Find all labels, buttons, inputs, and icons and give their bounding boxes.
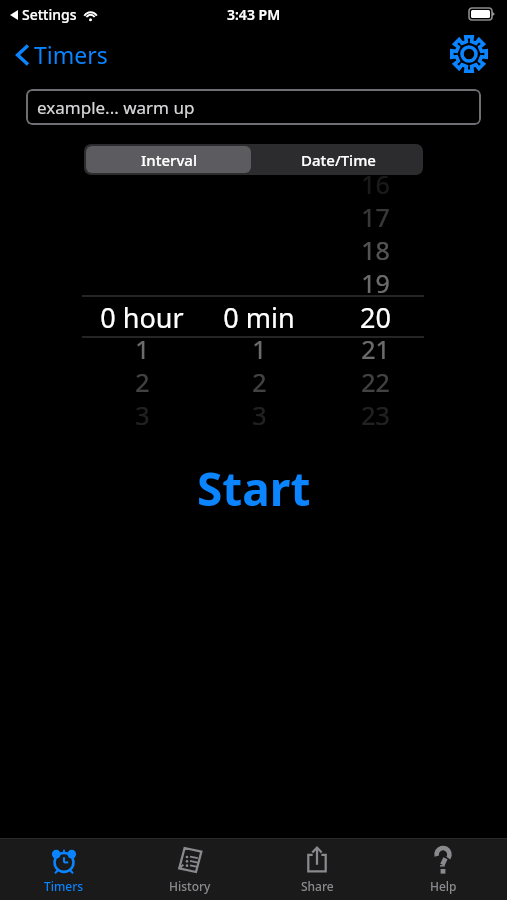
staticText: Timers <box>34 39 108 70</box>
staticText: Help <box>430 878 457 894</box>
staticText: History <box>169 878 211 894</box>
button[interactable]: Share <box>254 839 380 900</box>
staticText: Interval <box>141 150 197 170</box>
staticText: 1 <box>252 332 267 366</box>
staticText: 3:43 PM <box>227 5 281 24</box>
staticText: Settings <box>22 5 77 24</box>
staticText: example... warm up <box>37 96 195 119</box>
button[interactable]: Timers <box>12 35 112 74</box>
button[interactable] <box>0 197 507 429</box>
staticText: 2 <box>135 365 150 399</box>
button[interactable]: Start <box>0 457 507 519</box>
staticText: 21 <box>361 332 390 366</box>
staticText: Timers <box>44 878 84 894</box>
button[interactable]: Settings <box>447 32 491 76</box>
staticText: 19 <box>361 266 390 300</box>
staticText: 18 <box>361 233 390 267</box>
staticText: 23 <box>361 398 390 432</box>
button[interactable]: Date/Time <box>253 144 423 175</box>
staticText: 1 <box>135 332 150 366</box>
staticText: 20 <box>360 299 391 333</box>
staticText: 16 <box>361 167 390 201</box>
staticText: 17 <box>361 200 390 234</box>
staticText: Date/Time <box>301 150 376 170</box>
staticText: 2 <box>252 365 267 399</box>
staticText: 3 <box>135 398 150 432</box>
staticText: 0 hour <box>100 299 184 333</box>
staticText: Share <box>301 878 334 894</box>
button[interactable]: example... warm up <box>26 89 481 125</box>
staticText: Start <box>197 457 311 519</box>
button[interactable]: Help <box>380 839 506 900</box>
staticText: 0 min <box>223 299 295 333</box>
button[interactable]: Interval <box>86 146 251 173</box>
staticText: 22 <box>361 365 390 399</box>
staticText: 3 <box>252 398 267 432</box>
button[interactable]: Timers <box>1 839 127 900</box>
button[interactable]: History <box>127 839 253 900</box>
